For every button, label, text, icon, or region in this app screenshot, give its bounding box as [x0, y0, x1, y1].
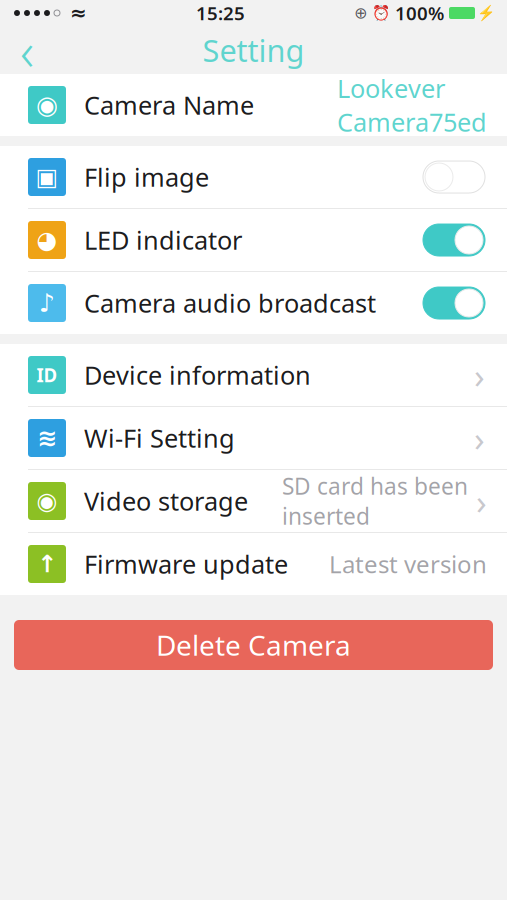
staticText: 100% — [395, 1, 444, 25]
staticText: Wi-Fi Setting — [84, 421, 235, 455]
staticText: Camera audio broadcast — [84, 286, 376, 320]
staticText: LED indicator — [84, 223, 242, 257]
staticText: ⊕ — [354, 4, 367, 22]
staticText: Setting — [202, 30, 304, 70]
staticText: ♪ — [39, 289, 55, 317]
staticText: Camera Name — [84, 88, 254, 122]
button[interactable]: ID — [0, 344, 507, 406]
staticText: › — [476, 478, 487, 524]
staticText: ≋ — [37, 424, 57, 452]
staticText: ◕ — [36, 226, 57, 254]
staticText: ID — [36, 363, 57, 387]
button[interactable]: ◉ — [0, 74, 507, 136]
button[interactable]: Back — [0, 26, 54, 74]
button[interactable]: ◕ — [0, 209, 507, 271]
staticText: Flip image — [84, 160, 209, 194]
staticText: Delete Camera — [156, 626, 351, 664]
staticText: ‹ — [20, 15, 34, 85]
button[interactable]: ♪ — [0, 272, 507, 334]
staticText: ◉ — [36, 487, 57, 515]
staticText: ◉ — [36, 91, 58, 119]
button[interactable]: Delete Camera — [14, 620, 493, 670]
staticText: › — [474, 415, 485, 461]
button[interactable]: ≋ — [0, 407, 507, 469]
staticText: ↑ — [37, 550, 57, 578]
staticText: Device information — [84, 358, 311, 392]
button[interactable]: ▣ — [0, 146, 507, 208]
staticText: Latest version — [329, 548, 487, 580]
staticText: Firmware update — [84, 547, 288, 581]
staticText: Lookever Camera75ed — [337, 71, 487, 139]
staticText: SD card has been inserted — [282, 471, 468, 531]
button[interactable]: ◉ — [0, 470, 507, 532]
staticText: ▣ — [35, 163, 58, 191]
staticText: 15:25 — [196, 1, 245, 25]
staticText: › — [474, 352, 485, 398]
button[interactable]: ↑ — [0, 533, 507, 595]
staticText: ≈ — [70, 2, 87, 24]
staticText: ⏰ — [372, 5, 390, 21]
staticText: Video storage — [84, 484, 248, 518]
staticText: ⚡ — [477, 5, 495, 21]
